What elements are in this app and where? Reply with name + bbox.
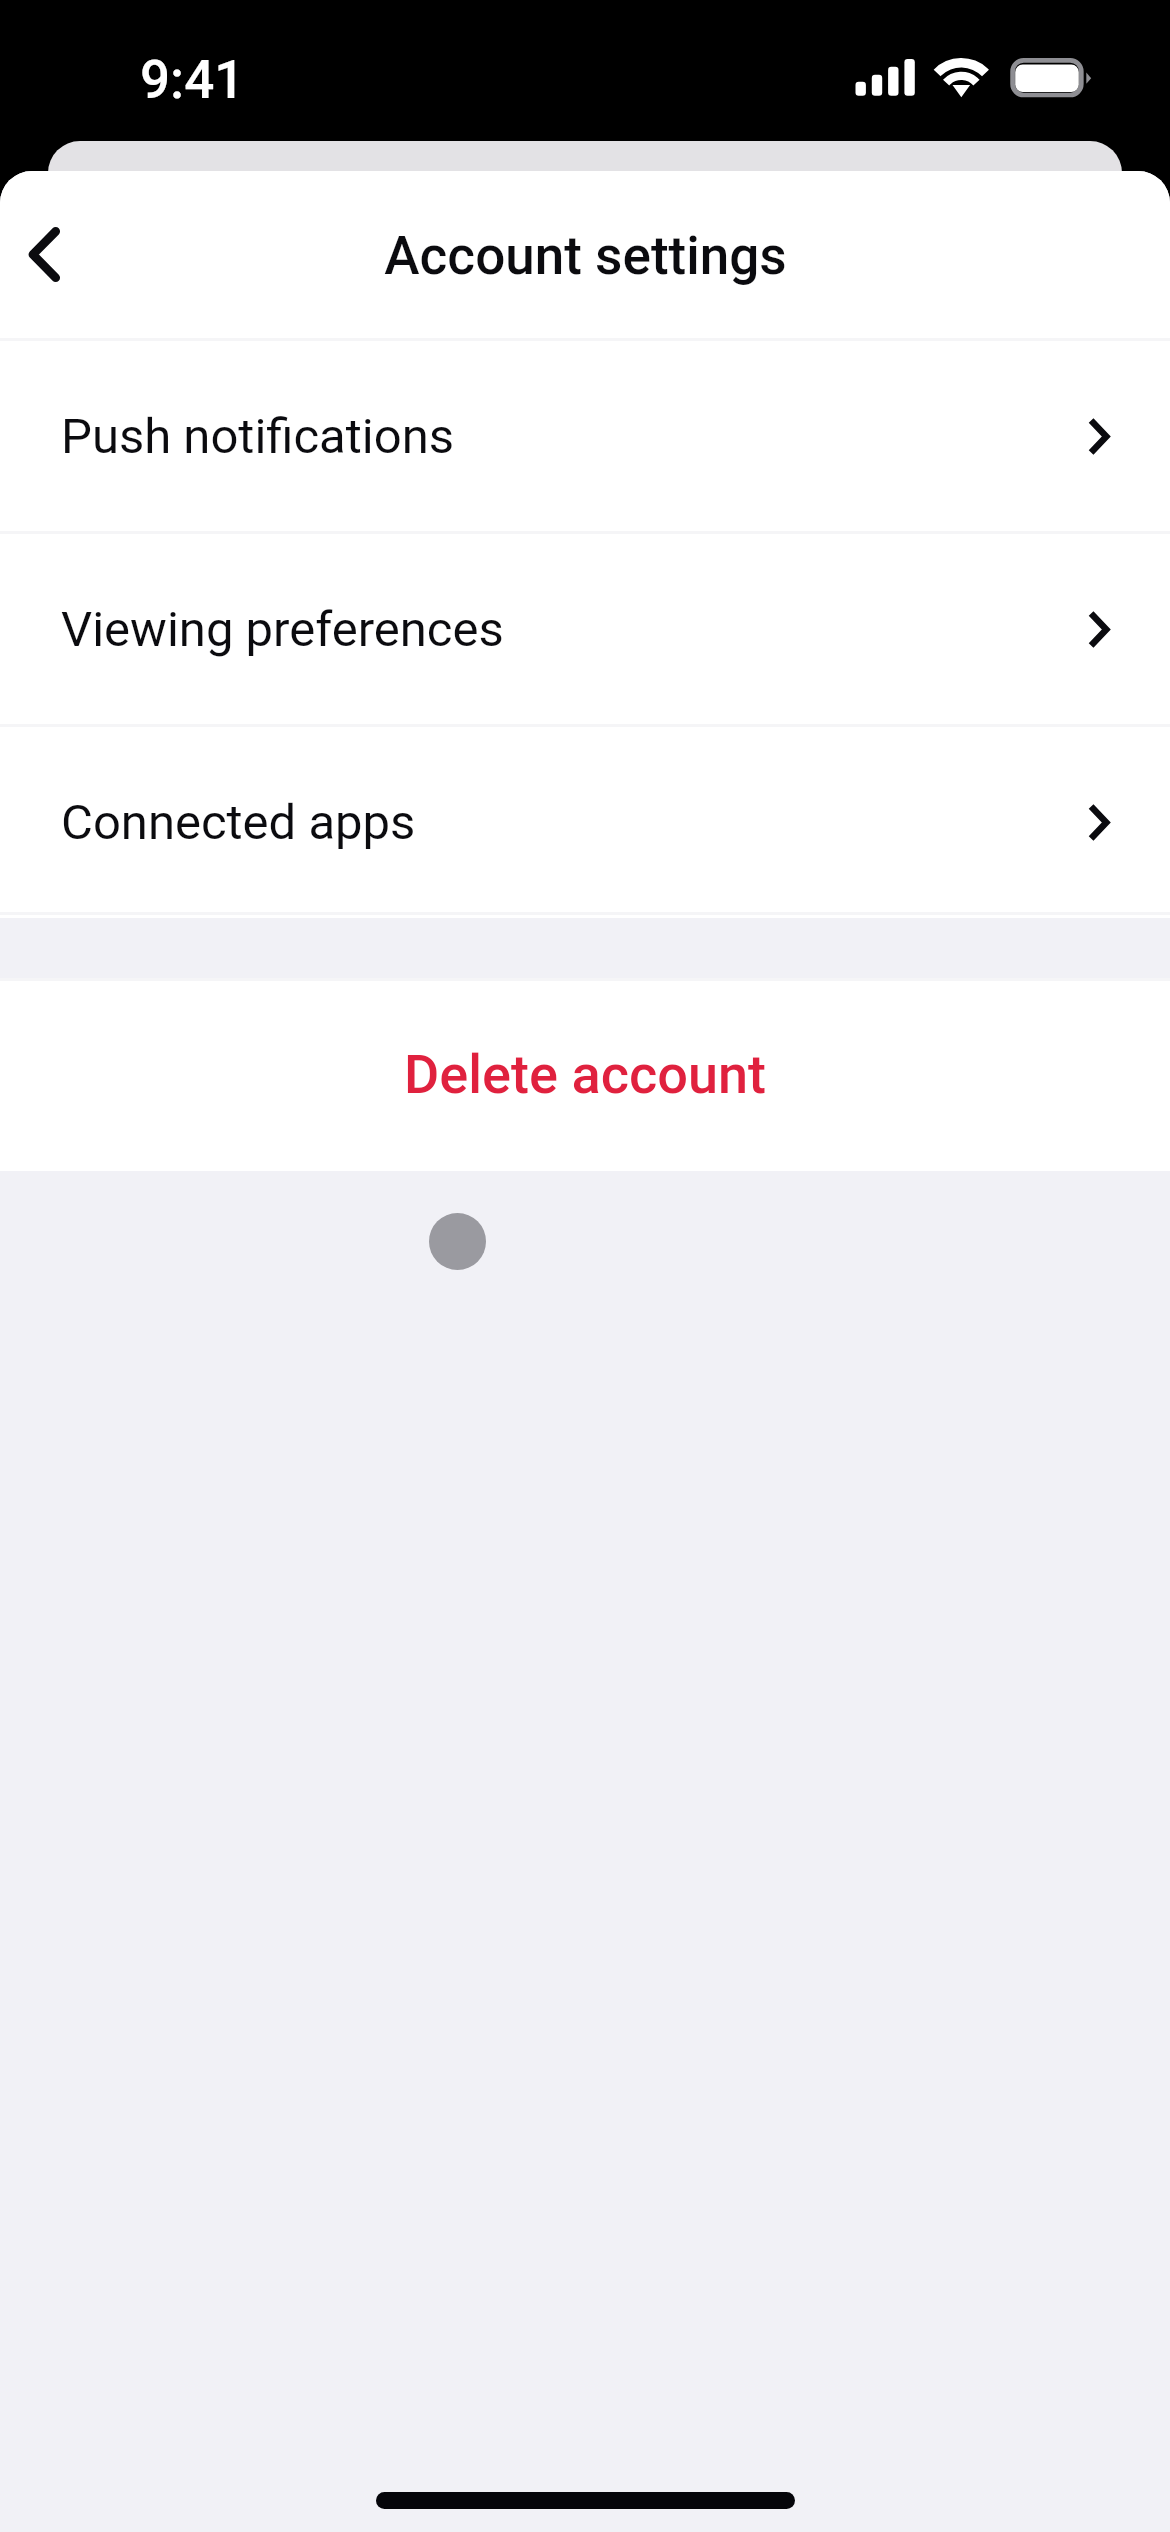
button[interactable]: Delete account xyxy=(0,978,1170,1171)
button[interactable]: Back xyxy=(0,204,118,314)
button[interactable]: Viewing preferences xyxy=(0,534,1170,724)
staticText: Delete account xyxy=(404,1043,767,1106)
staticText: 9:41 xyxy=(140,49,245,111)
staticText: Viewing preferences xyxy=(61,601,504,658)
button[interactable]: Connected apps xyxy=(0,727,1170,917)
staticText: Push notifications xyxy=(61,408,455,465)
staticText: Connected apps xyxy=(61,794,416,851)
staticText: Account settings xyxy=(384,225,787,287)
button[interactable]: Push notifications xyxy=(0,341,1170,531)
